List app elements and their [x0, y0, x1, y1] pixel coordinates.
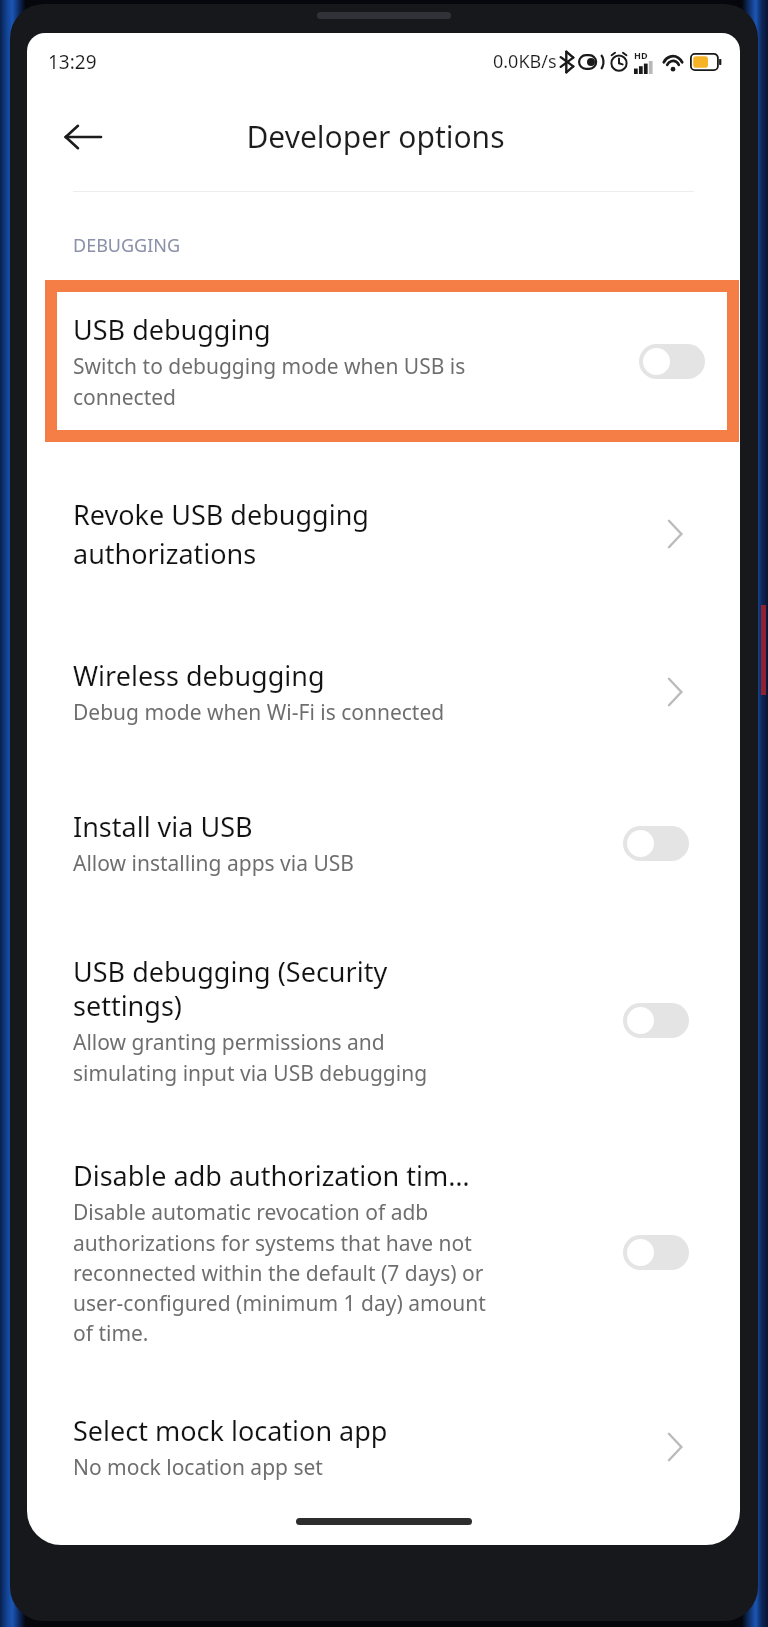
staticText: Developer options: [246, 116, 505, 157]
staticText: Install via USB: [73, 808, 253, 845]
button[interactable]: USB debugging: [57, 292, 727, 430]
staticText: Revoke USB debugging authorizations: [73, 496, 369, 572]
staticText: 13:29: [48, 49, 97, 75]
staticText: Disable adb authorization tim…: [73, 1157, 470, 1194]
button[interactable]: Install via USB: [27, 780, 740, 906]
button[interactable]: Disable adb authorization tim…: [27, 1134, 740, 1370]
staticText: Disable automatic revocation of adb auth…: [73, 1198, 486, 1347]
staticText: Select mock location app: [73, 1412, 388, 1449]
staticText: Allow granting permissions and simulatin…: [73, 1028, 428, 1087]
staticText: Allow installing apps via USB: [73, 849, 354, 878]
button[interactable]: Select mock location app: [27, 1392, 740, 1502]
staticText: Switch to debugging mode when USB is con…: [73, 352, 466, 411]
button[interactable]: Back: [57, 111, 109, 163]
button[interactable]: Revoke USB debugging authorizations: [27, 466, 740, 602]
staticText: USB debugging (Security settings): [73, 953, 388, 1024]
staticText: Debug mode when Wi-Fi is connected: [73, 698, 445, 727]
staticText: 0.0KB/s: [493, 49, 557, 74]
staticText: HD: [634, 49, 648, 61]
staticText: USB debugging: [73, 311, 271, 348]
staticText: No mock location app set: [73, 1453, 323, 1482]
staticText: DEBUGGING: [73, 233, 181, 258]
button[interactable]: Wireless debugging: [27, 624, 740, 760]
button[interactable]: USB debugging (Security settings): [27, 924, 740, 1116]
staticText: Wireless debugging: [73, 657, 325, 694]
